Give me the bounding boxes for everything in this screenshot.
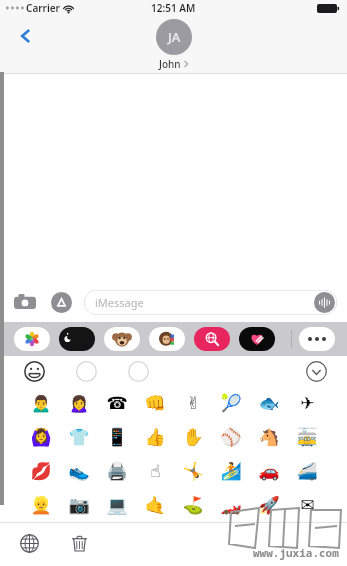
staticText: www.juxia.com	[253, 545, 339, 560]
button[interactable]: 🙆‍♀️	[22, 420, 60, 454]
button[interactable]: 🚀	[250, 488, 288, 522]
staticText: 💻	[106, 495, 128, 515]
button[interactable]: iMessage	[84, 290, 337, 315]
button[interactable]: Collapse keyboard	[306, 361, 327, 382]
staticText: 📱	[106, 427, 128, 447]
button[interactable]: 🐴	[250, 420, 288, 454]
staticText: 💋	[30, 461, 52, 481]
staticText: 👕	[68, 427, 90, 447]
button[interactable]: App Store	[48, 289, 74, 315]
button[interactable]: Back	[10, 20, 42, 52]
button[interactable]: ⚾	[212, 420, 250, 454]
staticText: 🖨️	[106, 461, 128, 481]
button[interactable]: ☎️	[98, 386, 136, 420]
button[interactable]: Digital Touch	[239, 327, 275, 351]
button[interactable]: 📷	[60, 488, 98, 522]
staticText: 🚄	[296, 461, 318, 481]
staticText: ✋	[182, 427, 204, 447]
button[interactable]: Animoji	[76, 361, 97, 382]
button[interactable]: Memoji monkey	[104, 327, 140, 351]
button[interactable]: ✉️	[288, 488, 326, 522]
staticText: 👟	[68, 461, 90, 481]
staticText: ☝️	[150, 461, 161, 481]
staticText: 🏎️	[220, 495, 242, 515]
staticText: JA	[168, 28, 181, 46]
button[interactable]: Recents	[128, 361, 149, 382]
button[interactable]: 👱	[22, 488, 60, 522]
staticText: 🎾	[220, 393, 242, 413]
button[interactable]: Memoji stickers	[149, 327, 185, 351]
button[interactable]: Emoji	[24, 361, 45, 382]
staticText: ✌️	[186, 393, 201, 413]
staticText: 🤙	[144, 495, 166, 515]
button[interactable]: 🖨️	[98, 454, 136, 488]
staticText: Carrier	[26, 1, 60, 15]
button[interactable]: Apple Pay	[59, 327, 95, 351]
button[interactable]: 🐟	[250, 386, 288, 420]
button[interactable]: ✈️	[288, 386, 326, 420]
button[interactable]: ☝️	[136, 454, 174, 488]
button[interactable]: Camera	[12, 289, 38, 315]
button[interactable]: 💋	[22, 454, 60, 488]
button[interactable]: 💻	[98, 488, 136, 522]
staticText: 👊	[144, 393, 166, 413]
button[interactable]: ⛳	[174, 488, 212, 522]
staticText: 🐴	[258, 427, 280, 447]
button[interactable]: Delete	[64, 528, 94, 558]
button[interactable]: Switch keyboard	[14, 528, 44, 558]
button[interactable]: 🎾	[212, 386, 250, 420]
button[interactable]: 👊	[136, 386, 174, 420]
button[interactable]: 🤙	[136, 488, 174, 522]
staticText: iMessage	[95, 295, 144, 310]
button[interactable]: 🏄	[212, 454, 250, 488]
staticText: 🐟	[258, 393, 280, 413]
button[interactable]: ✌️	[174, 386, 212, 420]
staticText: 🙆‍♀️	[30, 427, 52, 447]
button[interactable]: 👟	[60, 454, 98, 488]
button[interactable]: 👍	[136, 420, 174, 454]
button[interactable]: 🙍‍♀️	[60, 386, 98, 420]
staticText: 🚗	[258, 461, 280, 481]
staticText: 🙍‍♀️	[68, 393, 90, 413]
staticText: 🚀	[258, 495, 280, 515]
staticText: 👍	[144, 427, 166, 447]
button[interactable]: ✋	[174, 420, 212, 454]
button[interactable]: 👕	[60, 420, 98, 454]
button[interactable]: 🙍‍♂️	[22, 386, 60, 420]
staticText: ☎️	[106, 393, 128, 413]
staticText: 🙍‍♂️	[30, 393, 52, 413]
staticText: 👱	[30, 495, 52, 515]
staticText: 🤸	[182, 461, 204, 481]
button[interactable]: More apps	[299, 327, 335, 351]
staticText: ⚾	[220, 427, 242, 447]
staticText: 12:51 AM	[151, 1, 196, 15]
staticText: ✈️	[300, 393, 315, 413]
button[interactable]: Search	[194, 327, 230, 351]
button[interactable]: 🚄	[288, 454, 326, 488]
button[interactable]: 🚗	[250, 454, 288, 488]
staticText: 🏄	[220, 461, 242, 481]
button[interactable]: 📱	[98, 420, 136, 454]
staticText: 🚋	[296, 427, 318, 447]
button[interactable]: Record audio	[314, 292, 335, 313]
staticText: ⛳	[182, 495, 204, 515]
staticText: John	[159, 57, 181, 71]
button[interactable]: 🤸	[174, 454, 212, 488]
button[interactable]: 🚋	[288, 420, 326, 454]
button[interactable]: JA	[156, 19, 192, 71]
button[interactable]: 🏎️	[212, 488, 250, 522]
staticText: ✉️	[300, 495, 315, 515]
button[interactable]: Photos	[14, 327, 50, 351]
staticText: 📷	[68, 495, 90, 515]
